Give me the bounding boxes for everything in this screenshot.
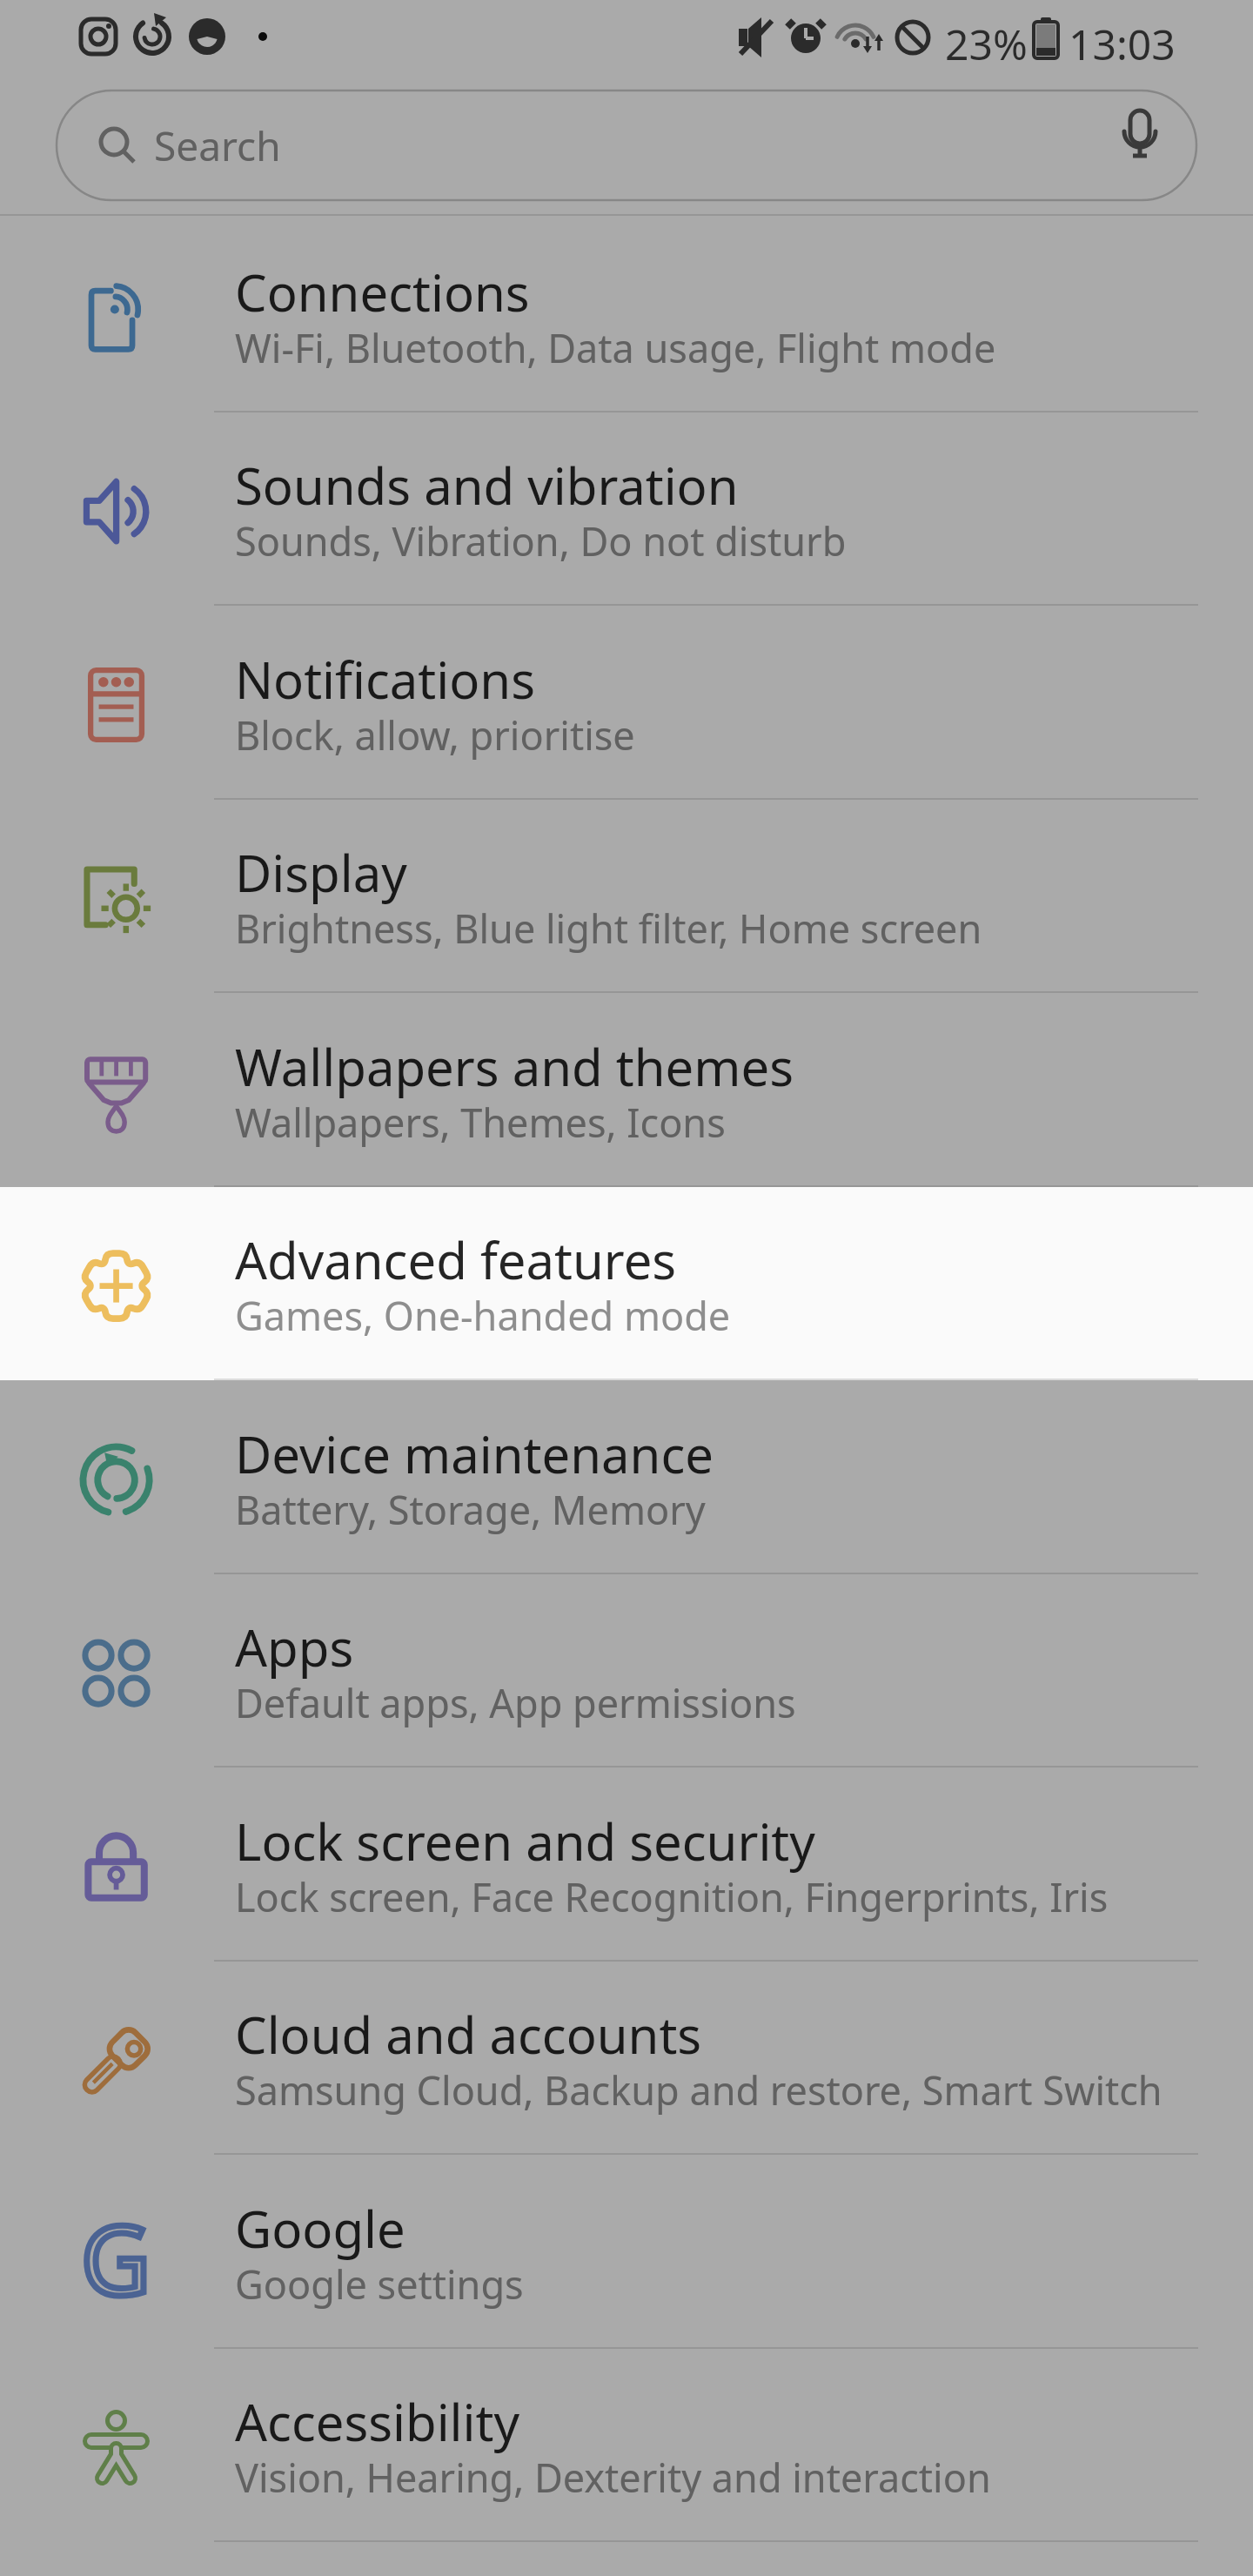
staticText: Default apps, App permissions (235, 1676, 796, 1729)
staticText: Display (235, 838, 407, 907)
staticText: G (81, 2192, 151, 2323)
staticText: Sounds and vibration (235, 451, 739, 520)
staticText: Brightness, Blue light filter, Home scre… (235, 902, 982, 955)
staticText: Vision, Hearing, Dexterity and interacti… (235, 2451, 991, 2504)
staticText: Sounds, Vibration, Do not disturb (235, 514, 847, 567)
staticText: Lock screen, Face Recognition, Fingerpri… (235, 1870, 1109, 1923)
staticText: Samsung Cloud, Backup and restore, Smart… (235, 2063, 1163, 2116)
button[interactable]: Cloud and accounts (0, 1962, 1253, 2155)
button[interactable]: Search (56, 90, 1197, 201)
staticText: 13:03 (1069, 16, 1176, 72)
button[interactable]: Wallpapers and themes (0, 994, 1253, 1187)
button[interactable]: Google (0, 2156, 1253, 2349)
button[interactable]: Apps (0, 1574, 1253, 1768)
button[interactable]: Display (0, 800, 1253, 993)
staticText: Lock screen and security (235, 1807, 815, 1875)
button[interactable]: Sounds and vibration (0, 413, 1253, 606)
staticText: Battery, Storage, Memory (235, 1483, 706, 1536)
staticText: Notifications (235, 645, 535, 714)
button[interactable]: Accessibility (0, 2349, 1253, 2542)
staticText: Block, allow, prioritise (235, 708, 635, 761)
button[interactable]: Connections (0, 219, 1253, 413)
staticText: Games, One-handed mode (235, 1289, 731, 1342)
button[interactable]: Advanced features (0, 1187, 1253, 1380)
button[interactable]: Lock screen and security (0, 1768, 1253, 1962)
button[interactable]: Notifications (0, 607, 1253, 800)
staticText: 23% (945, 16, 1028, 72)
staticText: Advanced features (235, 1225, 677, 1294)
staticText: Search (154, 118, 281, 173)
staticText: Wi-Fi, Bluetooth, Data usage, Flight mod… (235, 321, 996, 374)
staticText: Wallpapers, Themes, Icons (235, 1096, 726, 1149)
staticText: Device maintenance (235, 1419, 714, 1488)
staticText: Google (235, 2194, 405, 2263)
staticText: Apps (235, 1613, 354, 1681)
staticText: Accessibility (235, 2387, 520, 2456)
staticText: Google settings (235, 2257, 524, 2311)
button[interactable]: Device maintenance (0, 1381, 1253, 1574)
staticText: Connections (235, 258, 530, 326)
staticText: Cloud and accounts (235, 2000, 702, 2069)
staticText: Wallpapers and themes (235, 1032, 794, 1101)
